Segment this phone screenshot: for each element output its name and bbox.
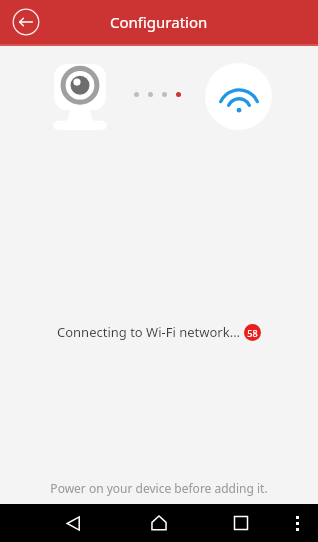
staticText: 58 — [247, 327, 258, 339]
staticText: Configuration — [110, 12, 208, 32]
button[interactable]: Recent apps — [224, 506, 258, 540]
button[interactable]: Back — [56, 506, 90, 540]
button[interactable]: Back — [12, 8, 40, 36]
button[interactable]: Home — [142, 506, 176, 540]
staticText: Power on your device before adding it. — [50, 480, 268, 496]
button[interactable]: More options — [282, 508, 312, 538]
staticText: Connecting to Wi-Fi network… — [57, 323, 240, 341]
